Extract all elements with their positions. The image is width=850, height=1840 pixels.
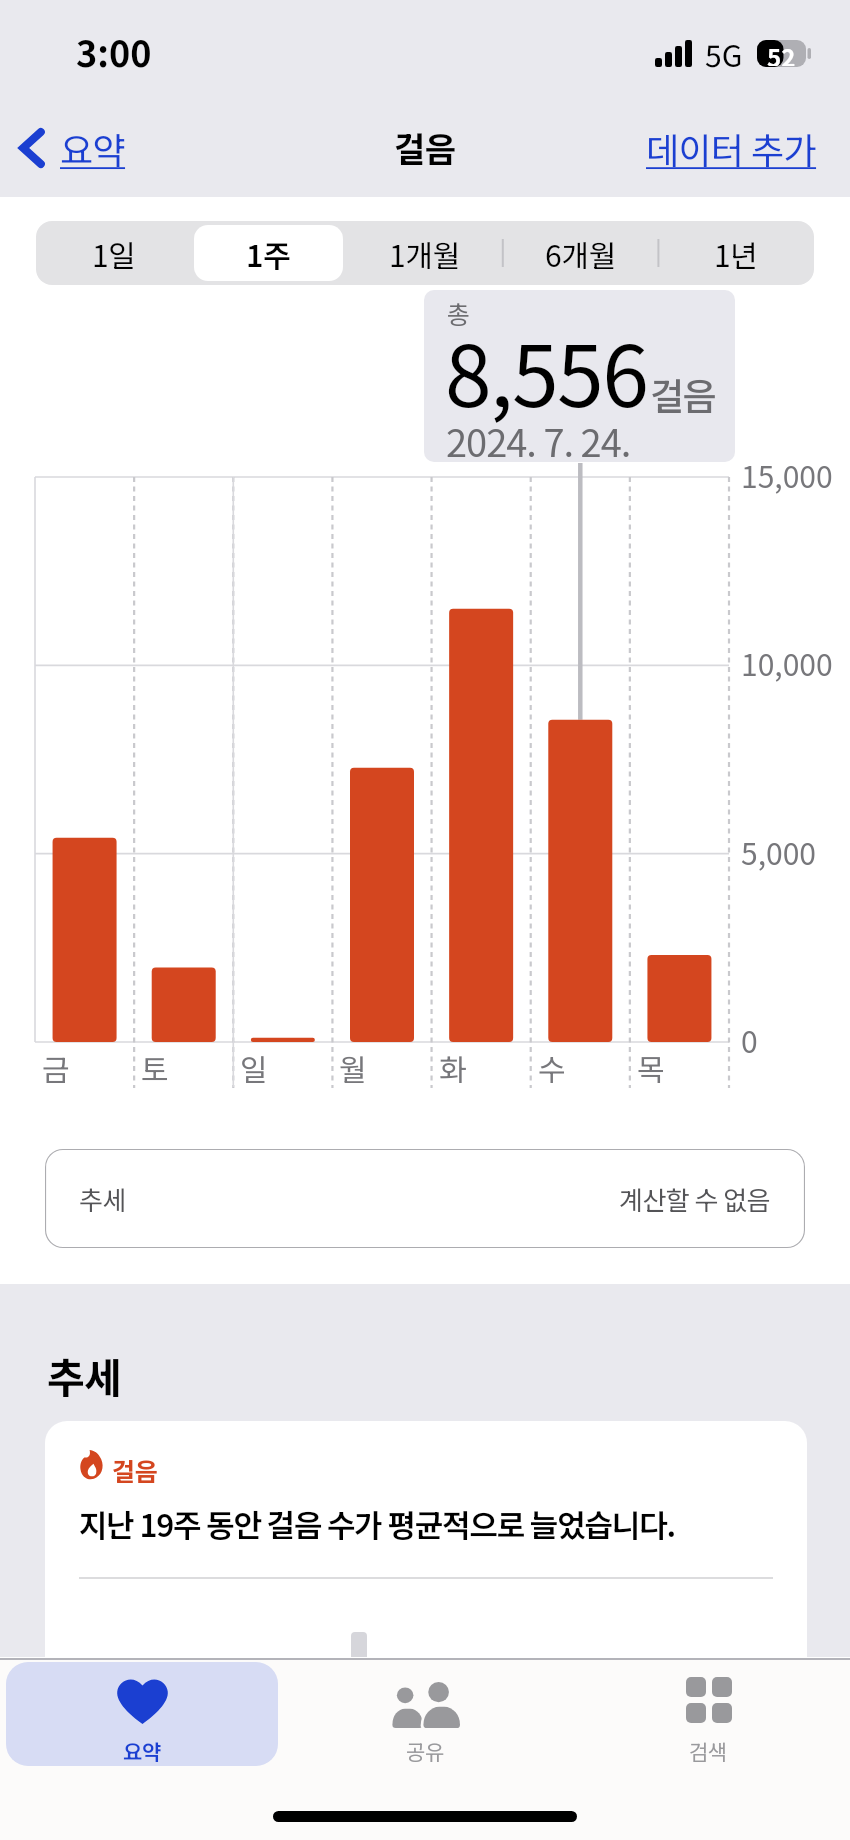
- staticText: 화: [439, 1046, 467, 1089]
- staticText: 15,000: [741, 453, 833, 496]
- staticText: 1주: [246, 232, 291, 275]
- button[interactable]: 6개월: [502, 221, 658, 285]
- staticText: 요약: [60, 122, 126, 174]
- button[interactable]: 걸음: [45, 1421, 807, 1657]
- staticText: 요약: [123, 1736, 162, 1766]
- staticText: 검색: [689, 1736, 728, 1766]
- staticText: 걸음: [394, 123, 456, 172]
- staticText: 8,556: [445, 310, 648, 432]
- button[interactable]: 1년: [658, 221, 814, 285]
- staticText: 1일: [92, 232, 136, 275]
- staticText: 수: [538, 1046, 566, 1089]
- button[interactable]: 데이터 추가: [636, 112, 850, 184]
- staticText: 금: [42, 1046, 70, 1089]
- staticText: 1개월: [389, 232, 460, 275]
- staticText: 총: [447, 295, 471, 331]
- staticText: 걸음: [112, 1452, 158, 1488]
- button[interactable]: 검색 탭: [567, 1662, 850, 1766]
- button[interactable]: 추세: [45, 1149, 805, 1248]
- staticText: 걸음: [650, 367, 716, 421]
- staticText: 52: [767, 39, 796, 66]
- staticText: 공유: [406, 1736, 445, 1766]
- staticText: 10,000: [741, 641, 833, 684]
- staticText: 일: [240, 1046, 268, 1089]
- button[interactable]: 1주: [191, 221, 346, 285]
- staticText: 5,000: [741, 830, 816, 873]
- staticText: 계산할 수 없음: [619, 1180, 771, 1218]
- staticText: 2024. 7. 24.: [446, 413, 631, 462]
- staticText: 월: [339, 1046, 367, 1089]
- button[interactable]: 1일: [36, 221, 191, 285]
- staticText: 5G: [705, 32, 743, 75]
- button[interactable]: 1개월: [346, 221, 502, 285]
- staticText: 지난 19주 동안 걸음 수가 평균적으로 늘었습니다.: [79, 1501, 675, 1546]
- staticText: 추세: [79, 1180, 126, 1218]
- staticText: 추세: [47, 1345, 122, 1404]
- staticText: 3:00: [76, 25, 152, 77]
- button[interactable]: 요약 탭: [6, 1662, 278, 1766]
- button[interactable]: 공유 탭: [284, 1662, 567, 1766]
- button[interactable]: 뒤로 가기, 요약: [0, 112, 138, 184]
- staticText: 1년: [714, 232, 758, 275]
- staticText: 토: [141, 1046, 169, 1089]
- staticText: 6개월: [545, 232, 616, 275]
- staticText: 목: [637, 1046, 665, 1089]
- staticText: 0: [741, 1018, 758, 1061]
